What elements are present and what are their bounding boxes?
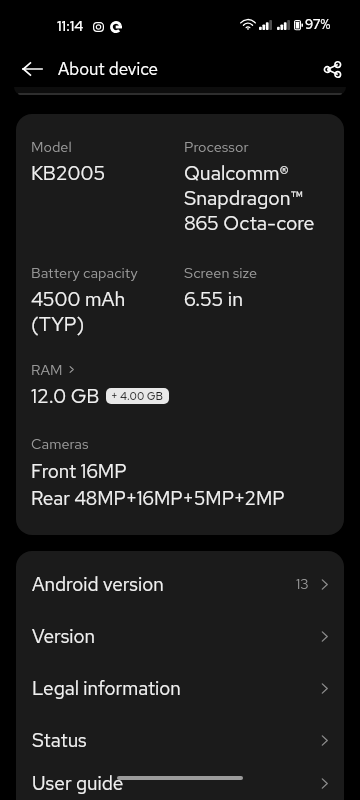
staticText: Front 16MP Rear 48MP+16MP+5MP+2MP xyxy=(31,457,285,511)
staticText: User guide xyxy=(32,771,319,796)
staticText: Qualcomm® Snapdragon™ 865 Octa-core xyxy=(184,160,315,235)
staticText: Status xyxy=(32,728,319,753)
staticText: RAM xyxy=(31,360,63,379)
staticText: 6.55 in xyxy=(184,286,244,311)
staticText: 4500 mAh (TYP) xyxy=(31,286,126,336)
staticText: Processor xyxy=(184,137,249,156)
staticText: Cameras xyxy=(31,434,89,453)
staticText: Android version xyxy=(32,572,296,597)
staticText: KB2005 xyxy=(31,160,106,185)
button[interactable]: Status xyxy=(16,714,344,766)
staticText: Legal information xyxy=(32,676,319,701)
staticText: 97% xyxy=(305,16,331,33)
staticText: Version xyxy=(32,624,319,649)
staticText: Model xyxy=(31,137,72,156)
button[interactable]: Share xyxy=(312,49,352,89)
staticText: + 4.00 GB xyxy=(111,389,164,404)
staticText: 12.0 GB xyxy=(31,383,100,408)
button[interactable]: Legal information xyxy=(16,662,344,714)
button[interactable]: User guide xyxy=(16,766,344,800)
button[interactable]: Android version xyxy=(16,558,344,610)
staticText: Screen size xyxy=(184,263,258,282)
staticText: About device xyxy=(58,58,159,80)
staticText: 13 xyxy=(296,575,309,594)
staticText: 11:14 xyxy=(57,17,84,36)
staticText: Battery capacity xyxy=(31,263,138,282)
button[interactable]: Back xyxy=(12,49,52,89)
button[interactable]: Version xyxy=(16,610,344,662)
